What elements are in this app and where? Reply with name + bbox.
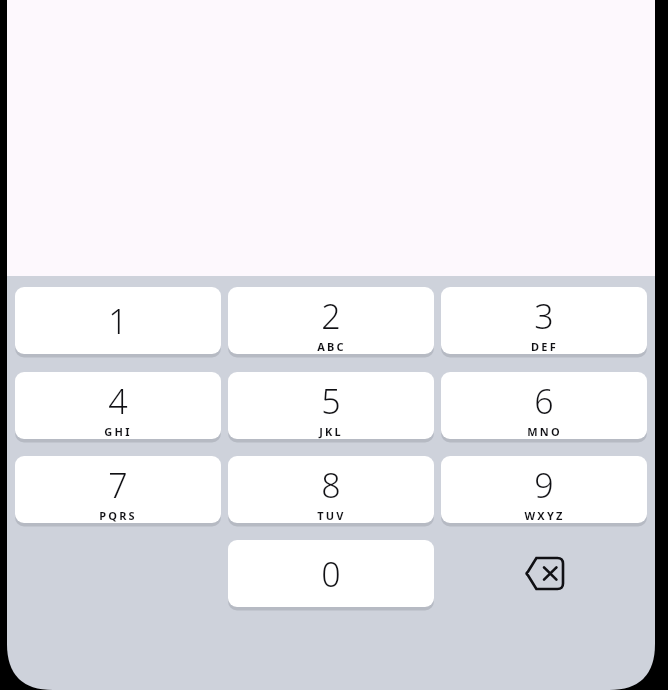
staticText: PQRS — [99, 508, 137, 523]
button[interactable]: 9 — [441, 456, 647, 523]
button[interactable]: 1 — [15, 287, 221, 354]
staticText: 8 — [321, 462, 341, 508]
button[interactable]: 3 — [441, 287, 647, 354]
button[interactable]: 6 — [441, 372, 647, 439]
staticText: 9 — [534, 462, 554, 508]
button[interactable]: 0 — [228, 540, 434, 607]
button[interactable]: 2 — [228, 287, 434, 354]
staticText: MNO — [527, 424, 562, 439]
staticText: DEF — [531, 339, 558, 354]
button[interactable]: 4 — [15, 372, 221, 439]
button[interactable]: 5 — [228, 372, 434, 439]
staticText: ABC — [317, 339, 346, 354]
staticText: 4 — [108, 378, 128, 424]
staticText: 6 — [534, 378, 554, 424]
button[interactable]: 7 — [15, 456, 221, 523]
staticText: JKL — [319, 424, 343, 439]
staticText: 5 — [321, 378, 341, 424]
button[interactable]: Backspace — [441, 540, 647, 607]
staticText: 0 — [321, 551, 341, 597]
staticText: GHI — [104, 424, 132, 439]
button[interactable]: 8 — [228, 456, 434, 523]
staticText: TUV — [317, 508, 346, 523]
staticText: 3 — [534, 293, 554, 339]
staticText: 1 — [108, 298, 128, 344]
staticText: WXYZ — [524, 508, 565, 523]
staticText: 7 — [108, 462, 128, 508]
staticText: 2 — [321, 293, 341, 339]
